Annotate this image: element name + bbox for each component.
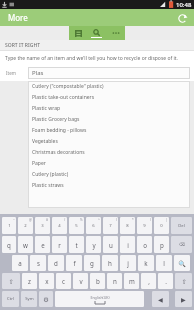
staticText: ▶ [181, 296, 186, 303]
button[interactable]: y [86, 236, 101, 253]
button[interactable]: Christmas decorations [28, 147, 190, 158]
button[interactable]: Plastic take-out containers [28, 92, 190, 103]
button[interactable]: 0 [154, 217, 169, 234]
button[interactable]: 4 [52, 217, 67, 234]
staticText: w [23, 241, 28, 249]
button[interactable]: w [18, 236, 33, 253]
button[interactable]: r [52, 236, 67, 253]
button[interactable]: m [124, 273, 139, 289]
staticText: l [163, 259, 165, 267]
staticText: Plas [32, 69, 44, 77]
button[interactable]: v [73, 273, 88, 289]
staticText: Cutlery (plastic) [32, 171, 69, 178]
button[interactable]: k [138, 255, 154, 271]
staticText: ^ [98, 218, 100, 222]
button[interactable]: Plastic straws [28, 180, 190, 191]
staticText: Paper [32, 160, 46, 167]
button[interactable]: c [56, 273, 71, 289]
button[interactable]: More [106, 26, 125, 40]
staticText: 3 [41, 223, 44, 229]
button[interactable]: Delete [171, 217, 192, 234]
staticText: ⇧ [181, 278, 187, 285]
staticText: ⇧ [8, 278, 14, 285]
staticText: * [132, 218, 134, 222]
button[interactable]: Paper [28, 158, 190, 169]
staticText: q [7, 241, 11, 249]
staticText: Foam bedding - pillows [32, 127, 87, 134]
button[interactable]: Search [87, 26, 106, 40]
button[interactable]: Sym [21, 291, 37, 307]
button[interactable]: 8 [120, 217, 135, 234]
staticText: ⚙ [43, 296, 49, 303]
staticText: 🔍 [178, 260, 186, 267]
button[interactable]: 5 [69, 217, 84, 234]
button[interactable]: z [22, 273, 37, 289]
button[interactable]: a [12, 255, 28, 271]
staticText: b [96, 277, 100, 285]
button[interactable]: Refresh [174, 10, 190, 26]
button[interactable]: Plastic wrap [28, 103, 190, 114]
staticText: . [165, 277, 167, 285]
button[interactable]: 9 [137, 217, 152, 234]
button[interactable]: p [154, 236, 169, 253]
staticText: 2 [24, 223, 27, 229]
staticText: , [148, 277, 150, 285]
staticText: x [45, 277, 49, 285]
button[interactable]: h [102, 255, 118, 271]
button[interactable]: Plas [28, 67, 190, 79]
button[interactable]: Shift [2, 273, 20, 289]
button[interactable]: Shift right [175, 273, 192, 289]
button[interactable]: Left [152, 291, 169, 307]
button[interactable]: j [120, 255, 136, 271]
button[interactable]: i [120, 236, 135, 253]
button[interactable]: g [84, 255, 100, 271]
staticText: c [62, 277, 65, 285]
button[interactable]: b [90, 273, 105, 289]
button[interactable]: 1 [2, 217, 16, 234]
button[interactable]: q [2, 236, 16, 253]
staticText: k [144, 259, 148, 267]
staticText: % [80, 218, 83, 222]
staticText: 7 [109, 223, 112, 229]
button[interactable]: Settings [39, 291, 53, 307]
button[interactable]: x [39, 273, 54, 289]
button[interactable]: n [107, 273, 122, 289]
staticText: ◀ [158, 296, 163, 303]
button[interactable]: Foam bedding - pillows [28, 125, 190, 136]
button[interactable]: Right [175, 291, 192, 307]
button[interactable]: . [158, 273, 173, 289]
button[interactable]: Delete [171, 236, 192, 253]
button[interactable]: t [69, 236, 84, 253]
button[interactable]: Plastic Grocery bags [28, 114, 190, 125]
button[interactable]: Cutlery ("compostable" plastic) [28, 81, 190, 92]
staticText: Christmas decorations [32, 149, 85, 156]
button[interactable]: , [141, 273, 156, 289]
staticText: # [46, 218, 49, 222]
button[interactable]: Vegetables [28, 136, 190, 147]
button[interactable]: o [137, 236, 152, 253]
button[interactable]: s [30, 255, 46, 271]
button[interactable]: l [156, 255, 172, 271]
staticText: English(UK) [90, 295, 110, 300]
button[interactable]: Search [174, 255, 190, 271]
staticText: h [108, 259, 112, 267]
button[interactable]: u [103, 236, 118, 253]
button[interactable]: Cutlery (plastic) [28, 169, 190, 180]
staticText: 10:48 [176, 1, 192, 9]
button[interactable]: English(UK) [55, 291, 144, 307]
staticText: 5 [75, 223, 78, 229]
button[interactable]: f [66, 255, 82, 271]
button[interactable]: Guide [69, 26, 87, 40]
button[interactable]: d [48, 255, 64, 271]
staticText: 4 [58, 223, 61, 229]
button[interactable]: 2 [18, 217, 33, 234]
staticText: j [127, 259, 129, 267]
button[interactable]: e [35, 236, 50, 253]
staticText: Plastic Grocery bags [32, 116, 80, 123]
staticText: Item [6, 70, 28, 76]
button[interactable]: 7 [103, 217, 118, 234]
staticText: 9 [143, 223, 146, 229]
button[interactable]: Ctrl [2, 291, 19, 307]
button[interactable]: 6 [86, 217, 101, 234]
button[interactable]: 3 [35, 217, 50, 234]
